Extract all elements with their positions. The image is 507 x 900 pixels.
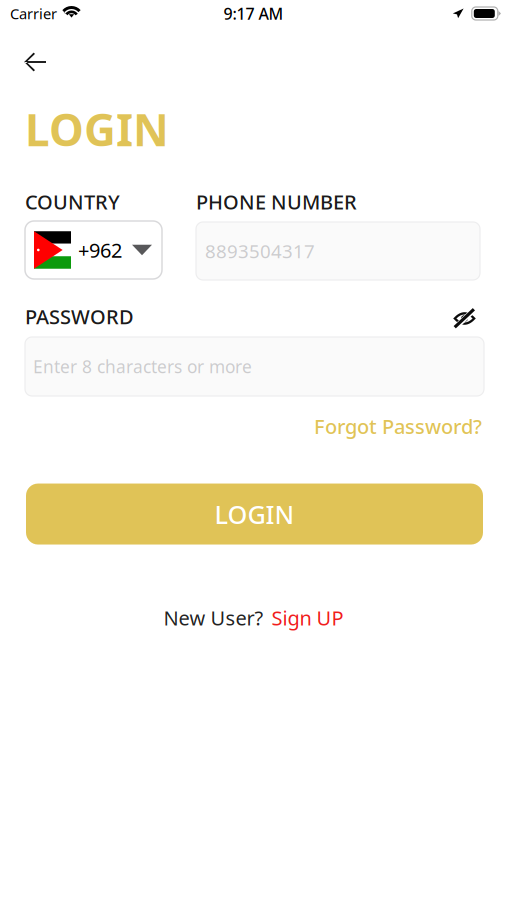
staticText: PASSWORD bbox=[25, 303, 134, 330]
staticText: Carrier bbox=[10, 4, 57, 23]
button[interactable]: Back bbox=[12, 42, 58, 82]
button[interactable]: +962 bbox=[25, 221, 162, 279]
button[interactable]: Enter 8 characters or more bbox=[25, 337, 484, 396]
button[interactable]: 8893504317 bbox=[196, 222, 480, 280]
staticText: LOGIN bbox=[214, 497, 294, 531]
staticText: 9:17 AM bbox=[223, 3, 283, 24]
staticText: +962 bbox=[78, 237, 122, 263]
button[interactable]: Forgot Password? bbox=[314, 413, 482, 440]
staticText: Enter 8 characters or more bbox=[33, 355, 252, 378]
button[interactable]: LOGIN bbox=[26, 483, 483, 544]
staticText: LOGIN bbox=[25, 100, 169, 158]
staticText: New User? bbox=[163, 604, 263, 631]
staticText: COUNTRY bbox=[25, 188, 120, 215]
staticText: 8893504317 bbox=[205, 239, 315, 263]
staticText: PHONE NUMBER bbox=[196, 188, 357, 215]
staticText: Forgot Password? bbox=[314, 413, 482, 440]
staticText: Sign UP bbox=[271, 604, 343, 631]
button[interactable]: Show password bbox=[449, 302, 484, 330]
button[interactable]: Sign UP bbox=[271, 604, 343, 631]
